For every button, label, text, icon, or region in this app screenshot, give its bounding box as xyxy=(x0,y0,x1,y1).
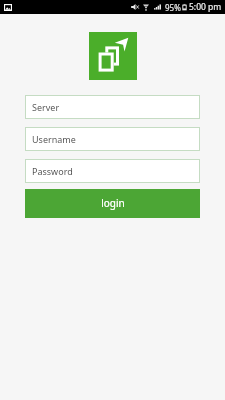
button[interactable]: Username xyxy=(25,127,200,151)
staticText: Password xyxy=(32,165,73,177)
staticText: login xyxy=(101,196,125,210)
button[interactable]: Server xyxy=(25,95,200,119)
staticText: 5:00 pm xyxy=(189,1,222,13)
button[interactable]: login xyxy=(25,189,200,218)
staticText: Username xyxy=(32,133,76,145)
button[interactable]: App logo xyxy=(89,32,137,80)
button[interactable]: Password xyxy=(25,159,200,183)
staticText: Server xyxy=(32,101,60,113)
staticText: 95% xyxy=(165,2,181,13)
